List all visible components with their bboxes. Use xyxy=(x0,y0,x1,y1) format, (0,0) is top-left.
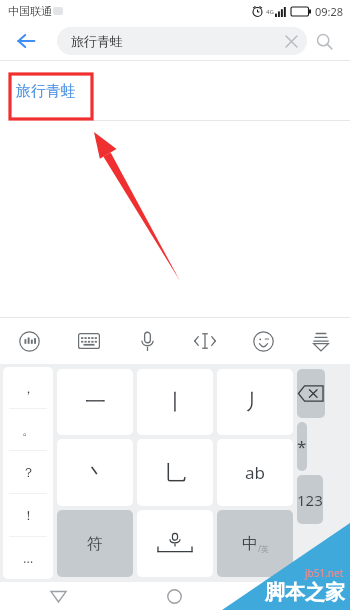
button[interactable]: 丿 xyxy=(217,369,293,435)
button[interactable]: Back xyxy=(0,582,116,610)
staticText: * xyxy=(297,435,307,458)
button[interactable]: 符 xyxy=(57,510,133,577)
button[interactable]: Keyboard layout xyxy=(59,318,118,364)
button[interactable]: Home xyxy=(116,582,233,610)
button[interactable]: 旅行青蛙 xyxy=(0,61,350,121)
button[interactable]: Voice input xyxy=(118,318,176,364)
staticText: 丨 xyxy=(165,389,186,415)
button[interactable]: Input method xyxy=(0,318,59,364)
staticText: 123 xyxy=(297,490,323,510)
button[interactable]: Hide keyboard xyxy=(292,318,350,364)
button[interactable]: Clear xyxy=(279,29,303,53)
staticText: ab xyxy=(245,461,265,484)
button[interactable]: 123 xyxy=(297,475,323,524)
button[interactable]: Space xyxy=(137,510,213,577)
button[interactable]: Search xyxy=(308,25,340,57)
staticText: 丿 xyxy=(245,389,266,415)
staticText: 旅行青蛙 xyxy=(16,82,76,101)
button[interactable]: Emoji xyxy=(234,318,292,364)
button[interactable]: 乚 xyxy=(137,439,213,506)
button[interactable]: ！ xyxy=(3,494,53,536)
button[interactable]: 。 xyxy=(3,409,53,450)
staticText: jb51.net xyxy=(305,566,344,580)
staticText: 中国联通 xyxy=(8,4,52,18)
staticText: 旅行青蛙 xyxy=(71,33,123,49)
staticText: 丶 xyxy=(85,460,106,486)
button[interactable]: Recent apps xyxy=(233,582,350,610)
button[interactable]: 丨 xyxy=(137,369,213,435)
staticText: 脚本之家 xyxy=(265,580,345,605)
button[interactable]: … xyxy=(3,537,53,579)
button[interactable]: 一 xyxy=(57,369,133,435)
staticText: ！ xyxy=(22,507,35,523)
staticText: /英 xyxy=(258,543,269,554)
staticText: 4G xyxy=(266,8,274,16)
button[interactable]: 旅行青蛙 xyxy=(57,27,307,55)
staticText: 。 xyxy=(22,422,35,438)
staticText: 09:28 xyxy=(315,4,344,19)
button[interactable]: Back xyxy=(8,23,44,59)
button[interactable]: ？ xyxy=(3,451,53,493)
button[interactable]: Cursor move xyxy=(176,318,234,364)
staticText: ？ xyxy=(22,464,35,480)
staticText: 中 xyxy=(242,534,258,554)
staticText: ， xyxy=(22,380,35,396)
staticText: 一 xyxy=(85,389,106,415)
button[interactable]: 中 xyxy=(217,510,293,577)
staticText: 乚 xyxy=(165,460,186,486)
button[interactable]: 丶 xyxy=(57,439,133,506)
staticText: 符 xyxy=(87,534,103,554)
button[interactable]: Backspace xyxy=(297,369,325,418)
staticText: … xyxy=(23,549,34,567)
button[interactable]: ab xyxy=(217,439,293,506)
button[interactable]: * xyxy=(297,422,307,471)
button[interactable]: ， xyxy=(3,367,53,408)
